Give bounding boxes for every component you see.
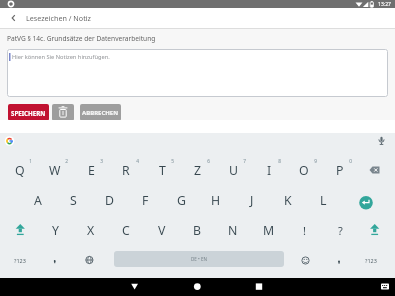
- staticText: ?: [338, 223, 343, 238]
- button[interactable]: R: [110, 156, 142, 184]
- staticText: 13:27: [378, 1, 391, 8]
- staticText: ?123: [14, 257, 26, 264]
- button[interactable]: DE • EN: [114, 251, 284, 267]
- staticText: !: [303, 223, 306, 238]
- staticText: Y: [52, 222, 59, 239]
- staticText: Hier können Sie Notizen hinzufügen.: [12, 53, 110, 61]
- button[interactable]: V: [146, 216, 178, 244]
- button[interactable]: [119, 278, 150, 296]
- button[interactable]: F: [129, 186, 161, 214]
- button[interactable]: ?123: [2, 246, 38, 274]
- staticText: C: [122, 222, 130, 239]
- staticText: F: [142, 192, 149, 209]
- button[interactable]: [7, 49, 388, 97]
- button[interactable]: Z: [182, 156, 214, 184]
- button[interactable]: K: [272, 186, 304, 214]
- button[interactable]: E: [75, 156, 107, 184]
- staticText: A: [34, 192, 42, 209]
- staticText: W: [49, 162, 61, 179]
- button[interactable]: M: [253, 216, 285, 244]
- staticText: B: [193, 222, 201, 239]
- staticText: T: [159, 162, 166, 179]
- button[interactable]: ?123: [353, 246, 389, 274]
- staticText: DE • EN: [191, 256, 208, 262]
- button[interactable]: U: [217, 156, 249, 184]
- button[interactable]: C: [110, 216, 142, 244]
- staticText: 1: [29, 158, 32, 165]
- button[interactable]: [52, 104, 74, 121]
- staticText: 4: [136, 158, 139, 165]
- staticText: G: [177, 192, 186, 209]
- staticText: 6: [207, 158, 210, 165]
- button[interactable]: Y: [39, 216, 71, 244]
- button[interactable]: SPEICHERN: [8, 104, 49, 121]
- staticText: Lesezeichen / Notiz: [26, 13, 91, 23]
- staticText: 5: [171, 158, 174, 165]
- staticText: U: [229, 162, 238, 179]
- button[interactable]: I: [253, 156, 285, 184]
- staticText: E: [88, 162, 95, 179]
- staticText: Z: [194, 162, 202, 179]
- button[interactable]: [244, 278, 275, 296]
- button[interactable]: ABBRECHEN: [80, 104, 121, 121]
- staticText: J: [250, 192, 254, 209]
- staticText: I: [267, 162, 272, 179]
- button[interactable]: G: [165, 186, 197, 214]
- staticText: M: [263, 222, 275, 239]
- button[interactable]: B: [181, 216, 213, 244]
- staticText: 7: [243, 158, 246, 165]
- staticText: R: [122, 162, 130, 179]
- staticText: 8: [278, 158, 281, 165]
- button[interactable]: T: [146, 156, 178, 184]
- staticText: 3: [100, 158, 103, 165]
- staticText: X: [87, 222, 95, 239]
- staticText: V: [158, 222, 166, 239]
- button[interactable]: [182, 278, 213, 296]
- button[interactable]: X: [75, 216, 107, 244]
- button[interactable]: D: [93, 186, 125, 214]
- staticText: PatVG § 14c. Grundsätze der Datenverarbe…: [7, 34, 156, 43]
- button[interactable]: N: [217, 216, 249, 244]
- button[interactable]: H: [200, 186, 232, 214]
- button[interactable]: Q: [4, 156, 36, 184]
- staticText: L: [320, 192, 327, 209]
- button[interactable]: O: [288, 156, 320, 184]
- staticText: ABBRECHEN: [82, 109, 119, 117]
- staticText: H: [211, 192, 221, 209]
- staticText: D: [105, 192, 114, 209]
- staticText: O: [299, 162, 309, 179]
- staticText: ?123: [365, 257, 377, 264]
- button[interactable]: L: [307, 186, 339, 214]
- button[interactable]: J: [236, 186, 268, 214]
- staticText: N: [228, 222, 238, 239]
- button[interactable]: [2, 133, 18, 149]
- button[interactable]: [0, 8, 160, 28]
- button[interactable]: S: [57, 186, 89, 214]
- staticText: 9: [314, 158, 317, 165]
- staticText: P: [336, 162, 344, 179]
- button[interactable]: W: [39, 156, 71, 184]
- button[interactable]: P: [324, 156, 356, 184]
- staticText: SPEICHERN: [11, 109, 46, 117]
- staticText: K: [284, 192, 292, 209]
- staticText: Q: [15, 162, 25, 179]
- staticText: 0: [349, 158, 352, 165]
- staticText: 2: [65, 158, 68, 165]
- button[interactable]: A: [22, 186, 54, 214]
- staticText: S: [70, 192, 77, 209]
